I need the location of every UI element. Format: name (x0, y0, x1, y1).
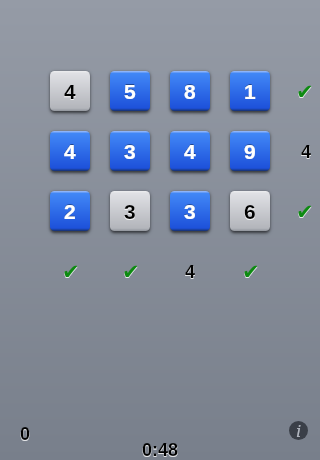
staticText: 6 (244, 201, 256, 224)
staticText: 3 (124, 200, 136, 223)
button[interactable]: Solved (242, 260, 259, 277)
button[interactable]: 9 (230, 131, 270, 171)
staticText: 1 (244, 80, 256, 103)
staticText: 4 (185, 262, 196, 282)
staticText: ✔ (296, 201, 313, 218)
staticText: 2 (64, 199, 76, 222)
button[interactable]: 5 (110, 71, 150, 111)
staticText: 4 (64, 80, 76, 103)
staticText: 0:48 (142, 441, 179, 460)
staticText: 3 (124, 139, 136, 162)
staticText: 4 (301, 143, 312, 163)
staticText: ✔ (296, 81, 313, 98)
staticText: 4 (64, 139, 76, 162)
staticText: ✔ (62, 261, 79, 278)
staticText: 4 (184, 139, 196, 162)
button[interactable]: 4 (170, 131, 210, 171)
button[interactable]: Info (289, 421, 308, 440)
button[interactable]: 3 (110, 191, 150, 231)
staticText: 4 (64, 140, 76, 163)
staticText: 8 (184, 79, 196, 102)
staticText: 0 (20, 424, 31, 444)
button[interactable]: 1 (230, 71, 270, 111)
staticText: 6 (244, 200, 256, 223)
staticText: 0 (20, 425, 31, 445)
staticText: 5 (124, 80, 136, 103)
staticText: 8 (184, 80, 196, 103)
button[interactable]: Solved (296, 80, 313, 97)
button[interactable]: 4 (50, 131, 90, 171)
staticText: ✔ (122, 261, 139, 278)
staticText: ✔ (122, 260, 139, 277)
button[interactable]: 8 (170, 71, 210, 111)
staticText: i (296, 421, 302, 440)
button[interactable]: Solved (122, 260, 139, 277)
button[interactable]: 3 (110, 131, 150, 171)
staticText: 2 (64, 200, 76, 223)
staticText: 5 (124, 79, 136, 102)
button[interactable]: Solved (296, 200, 313, 217)
button[interactable]: 2 (50, 191, 90, 231)
button[interactable]: 3 (170, 191, 210, 231)
staticText: 3 (184, 199, 196, 222)
staticText: 4 (64, 81, 76, 104)
staticText: 3 (124, 140, 136, 163)
button[interactable]: 4 (50, 71, 90, 111)
staticText: 3 (184, 200, 196, 223)
button[interactable]: 6 (230, 191, 270, 231)
staticText: 9 (244, 140, 256, 163)
staticText: ✔ (242, 260, 259, 277)
staticText: 1 (244, 79, 256, 102)
staticText: 0:48 (142, 440, 179, 460)
staticText: 4 (301, 142, 312, 162)
staticText: 9 (244, 139, 256, 162)
staticText: ✔ (296, 200, 313, 217)
staticText: ✔ (62, 260, 79, 277)
staticText: ✔ (296, 80, 313, 97)
staticText: 4 (184, 140, 196, 163)
staticText: 3 (124, 201, 136, 224)
staticText: ✔ (242, 261, 259, 278)
button[interactable]: Solved (62, 260, 79, 277)
staticText: 4 (185, 263, 196, 283)
